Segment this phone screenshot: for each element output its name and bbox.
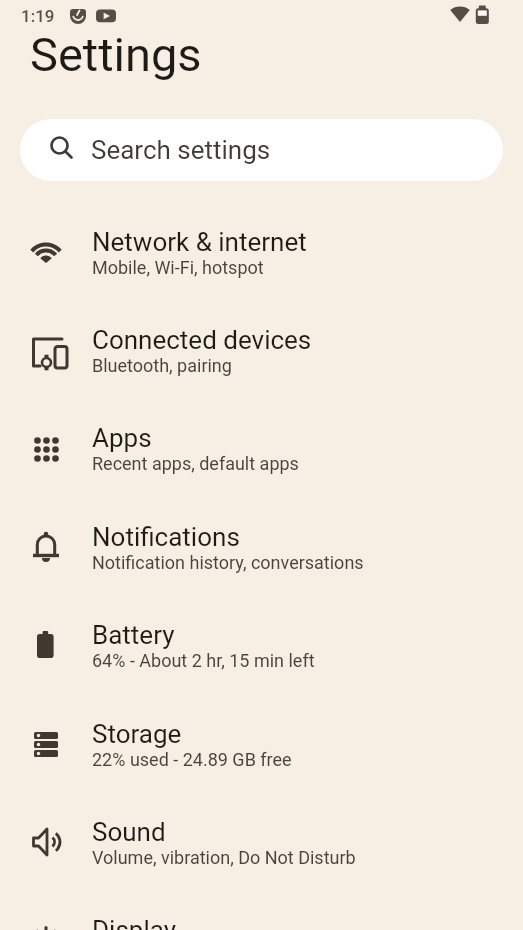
- staticText: Storage: [92, 719, 182, 749]
- staticText: Battery: [92, 620, 175, 650]
- staticText: Settings: [30, 27, 202, 82]
- staticText: Network & internet: [92, 227, 307, 257]
- staticText: Notifications: [92, 522, 240, 552]
- staticText: 22% used - 24.89 GB free: [92, 749, 292, 770]
- staticText: Bluetooth, pairing: [92, 355, 232, 376]
- staticText: Sound: [92, 817, 166, 847]
- staticText: 64% - About 2 hr, 15 min left: [92, 650, 315, 671]
- staticText: Connected devices: [92, 325, 312, 355]
- staticText: Apps: [92, 423, 152, 453]
- staticText: Mobile, Wi-Fi, hotspot: [92, 257, 264, 278]
- staticText: Search settings: [91, 135, 271, 165]
- button[interactable]: Storage: [0, 695, 523, 793]
- staticText: Volume, vibration, Do Not Disturb: [92, 847, 356, 868]
- button[interactable]: Notifications: [0, 498, 523, 596]
- button[interactable]: Network & internet: [0, 203, 523, 301]
- staticText: Notification history, conversations: [92, 552, 364, 573]
- staticText: Display: [92, 915, 176, 930]
- button[interactable]: Search settings: [20, 119, 503, 181]
- staticText: 1:19: [21, 6, 55, 26]
- button[interactable]: Sound: [0, 793, 523, 891]
- button[interactable]: Connected devices: [0, 301, 523, 399]
- staticText: Recent apps, default apps: [92, 453, 299, 474]
- button[interactable]: Apps: [0, 399, 523, 497]
- button[interactable]: Display: [0, 891, 523, 930]
- button[interactable]: Battery: [0, 596, 523, 694]
